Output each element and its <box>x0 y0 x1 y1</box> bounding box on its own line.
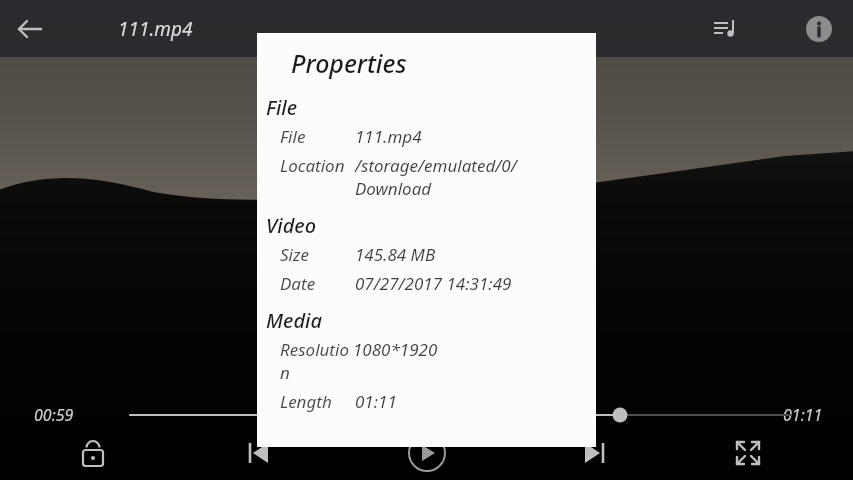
staticText: Media <box>266 307 322 334</box>
staticText: Location <box>280 154 355 177</box>
staticText: /storage/emulated/0/ Download <box>355 154 596 200</box>
staticText: 00:59 <box>34 404 74 426</box>
staticText: 1080*1920 <box>353 338 596 361</box>
button[interactable]: Info <box>795 5 843 53</box>
staticText: Resolution <box>280 338 353 384</box>
button[interactable]: Previous <box>236 430 282 476</box>
button[interactable]: Seek bar <box>0 402 853 428</box>
staticText: Date <box>280 272 355 295</box>
staticText: 01:11 <box>783 404 823 426</box>
staticText: 01:11 <box>355 390 596 413</box>
staticText: 07/27/2017 14:31:49 <box>355 272 596 295</box>
button[interactable]: Play <box>404 430 450 476</box>
staticText: Properties <box>291 46 407 80</box>
button[interactable]: Playlist <box>701 5 749 53</box>
button[interactable]: Next <box>571 430 617 476</box>
staticText: Length <box>280 390 355 413</box>
staticText: File <box>280 125 355 148</box>
staticText: 111.mp4 <box>118 16 193 42</box>
staticText: Size <box>280 243 355 266</box>
button[interactable]: Lock <box>70 430 116 476</box>
staticText: File <box>266 94 297 121</box>
staticText: 145.84 MB <box>355 243 596 266</box>
staticText: Video <box>266 212 317 239</box>
button[interactable]: Fullscreen <box>725 430 771 476</box>
button[interactable]: Back <box>6 5 54 53</box>
staticText: 111.mp4 <box>355 125 596 148</box>
